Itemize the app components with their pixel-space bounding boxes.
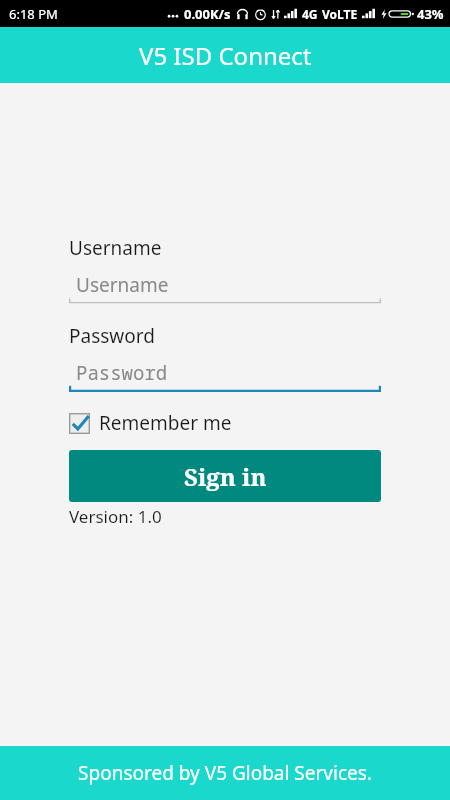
staticText: 0.00K/s [184, 5, 231, 23]
staticText: VoLTE [322, 6, 358, 22]
staticText: Password [69, 323, 155, 349]
staticText: Remember me [99, 410, 232, 436]
staticText: Sign in [184, 460, 267, 493]
staticText: Username [69, 235, 162, 261]
staticText: 43% [417, 5, 444, 23]
staticText: Sponsored by V5 Global Services. [78, 760, 372, 786]
staticText: 4G [302, 6, 318, 22]
staticText: 6:18 PM [9, 5, 58, 23]
button[interactable]: Remember me [69, 407, 232, 439]
button[interactable]: Sign in [69, 450, 381, 502]
staticText: Password [76, 360, 168, 386]
staticText: V5 ISD Connect [139, 39, 312, 72]
staticText: Version: 1.0 [69, 505, 162, 528]
staticText: Username [76, 272, 169, 298]
button[interactable]: Password [69, 359, 381, 393]
button[interactable]: Username [69, 271, 381, 304]
